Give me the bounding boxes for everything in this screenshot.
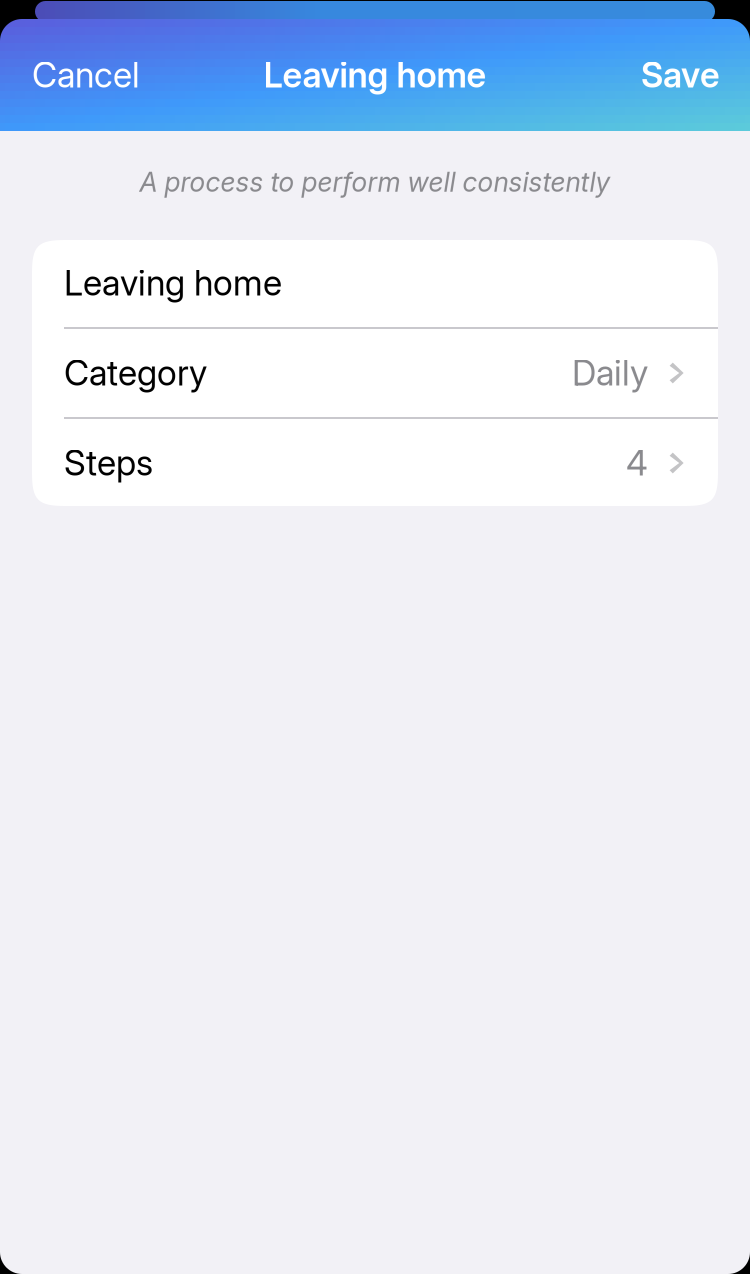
staticText: Steps bbox=[64, 442, 153, 484]
staticText: 4 bbox=[626, 442, 648, 484]
staticText: A process to perform well consistently bbox=[139, 166, 610, 198]
staticText: Cancel bbox=[32, 54, 140, 96]
button[interactable]: Save bbox=[641, 54, 720, 96]
button[interactable]: Category bbox=[32, 329, 718, 417]
staticText: Daily bbox=[572, 352, 648, 394]
staticText: Save bbox=[641, 54, 720, 96]
button[interactable]: Leaving home bbox=[32, 239, 718, 327]
staticText: Leaving home bbox=[263, 54, 486, 96]
button[interactable]: Steps bbox=[32, 419, 718, 507]
staticText: Category bbox=[64, 352, 207, 394]
button[interactable]: Cancel bbox=[32, 54, 140, 96]
staticText: Leaving home bbox=[64, 262, 282, 304]
